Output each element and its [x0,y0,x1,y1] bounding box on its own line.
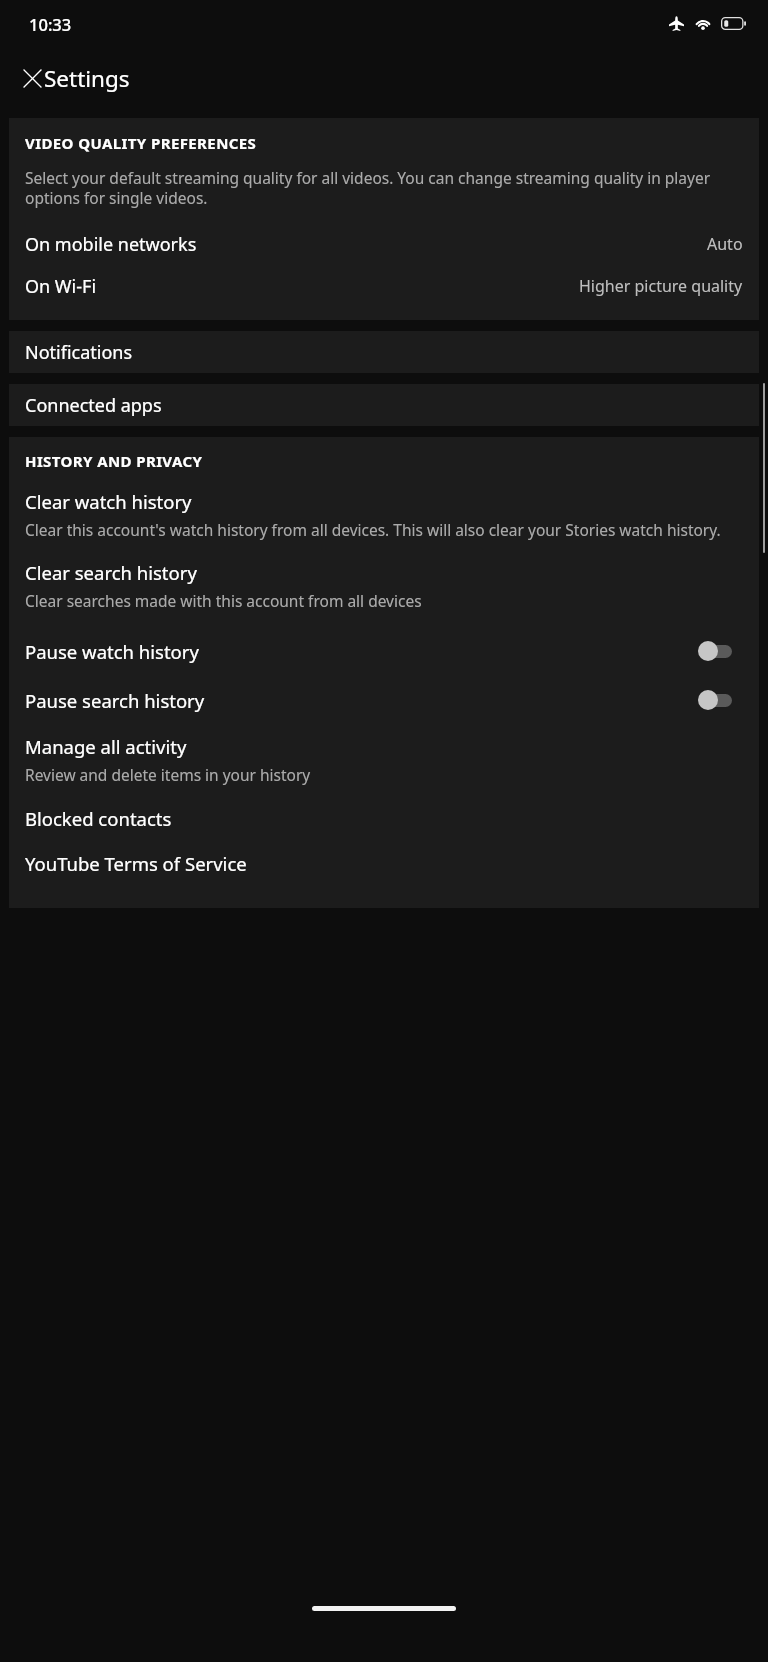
staticText: Select your default streaming quality fo… [25,167,737,209]
button[interactable]: On mobile networks [9,223,759,265]
button[interactable]: Pause watch history [9,631,759,671]
staticText: On mobile networks [25,232,197,257]
button[interactable]: On Wi-Fi [9,265,759,307]
button[interactable]: Connected apps [9,384,759,426]
staticText: Blocked contacts [25,806,172,831]
staticText: Clear watch history [25,489,192,514]
button[interactable]: Notifications [9,331,759,373]
staticText: Pause search history [25,688,205,713]
staticText: YouTube Terms of Service [25,851,247,876]
staticText: Manage all activity [25,734,187,759]
staticText: Connected apps [25,393,162,418]
staticText: Pause watch history [25,639,199,664]
staticText: Settings [44,63,130,94]
staticText: On Wi-Fi [25,274,97,299]
button[interactable]: Clear search history [9,558,759,613]
button[interactable]: Blocked contacts [9,803,759,833]
staticText: VIDEO QUALITY PREFERENCES [25,133,257,153]
staticText: Review and delete items in your history [25,764,311,785]
staticText: Auto [707,233,743,255]
button[interactable]: YouTube Terms of Service [9,848,759,878]
staticText: Clear searches made with this account fr… [25,590,422,611]
staticText: Clear this account's watch history from … [25,519,721,540]
staticText: Higher picture quality [579,275,743,297]
button[interactable]: Pause search history [9,680,759,720]
button[interactable]: Close [8,54,56,102]
staticText: Clear search history [25,560,197,585]
button[interactable]: Manage all activity [9,732,759,787]
button[interactable]: Clear watch history [9,487,759,542]
staticText: 10:33 [29,13,72,35]
staticText: HISTORY AND PRIVACY [25,451,203,471]
staticText: Notifications [25,340,133,365]
